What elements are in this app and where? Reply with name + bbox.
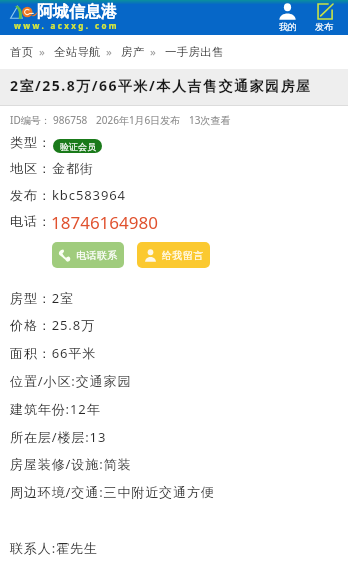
staticText: 价格：25.8万	[10, 316, 95, 334]
button[interactable]: 我的	[271, 1, 305, 34]
staticText: 联系人:霍先生	[10, 539, 98, 557]
button[interactable]: 给我留言	[137, 242, 210, 268]
staticText: 面积：66平米	[10, 344, 97, 362]
button[interactable]: 发布	[309, 1, 343, 34]
staticText: 2室/25.8万/66平米/本人吉售交通家园房屋	[10, 76, 312, 95]
staticText: 周边环境/交通:三中附近交通方便	[10, 483, 215, 501]
button[interactable]: 全站导航	[54, 45, 101, 59]
staticText: 13次查看	[189, 113, 231, 127]
staticText: 房产	[121, 45, 145, 59]
staticText: 电话：	[10, 213, 52, 229]
button[interactable]: 一手房出售	[165, 45, 224, 59]
staticText: kbc583964	[52, 186, 126, 204]
staticText: 房屋装修/设施:简装	[10, 455, 132, 473]
staticText: 所在层/楼层:13	[10, 428, 107, 446]
staticText: 首页	[10, 45, 34, 59]
staticText: 电话联系	[76, 249, 118, 262]
staticText: 金都街	[52, 160, 94, 176]
staticText: 发布	[315, 21, 333, 32]
staticText: 2026年1月6日发布	[96, 113, 181, 127]
staticText: 阿城信息港	[37, 2, 117, 22]
staticText: ID编号：	[10, 113, 51, 127]
staticText: 地区：	[10, 160, 52, 176]
staticText: 位置/小区:交通家园	[10, 372, 132, 390]
button[interactable]: 电话联系	[52, 242, 124, 268]
staticText: 986758	[53, 113, 88, 127]
staticText: 给我留言	[162, 249, 204, 262]
staticText: 发布：	[10, 187, 52, 203]
staticText: »	[150, 44, 157, 60]
staticText: 全站导航	[54, 45, 101, 59]
staticText: 一手房出售	[165, 45, 224, 59]
button[interactable]: 首页	[10, 45, 34, 59]
staticText: www. acxxg. com	[14, 20, 120, 31]
staticText: »	[106, 44, 113, 60]
button[interactable]: 房产	[121, 45, 145, 59]
staticText: 我的	[279, 21, 297, 32]
staticText: »	[39, 44, 46, 60]
staticText: 房型：2室	[10, 289, 74, 307]
staticText: 验证会员	[60, 141, 96, 152]
staticText: 建筑年份:12年	[10, 400, 101, 418]
staticText: 类型：	[10, 134, 52, 150]
staticText: 18746164980	[51, 211, 158, 234]
